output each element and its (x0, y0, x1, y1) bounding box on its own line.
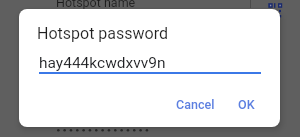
staticText: Hotspot name (56, 0, 136, 10)
staticText: Hotspot password (37, 24, 168, 43)
staticText: hay444kcwdxvv9n (39, 54, 166, 72)
button[interactable]: Cancel (168, 92, 223, 117)
button[interactable]: OK (230, 92, 263, 117)
staticText: OK (238, 97, 255, 112)
staticText: Cancel (176, 97, 215, 112)
